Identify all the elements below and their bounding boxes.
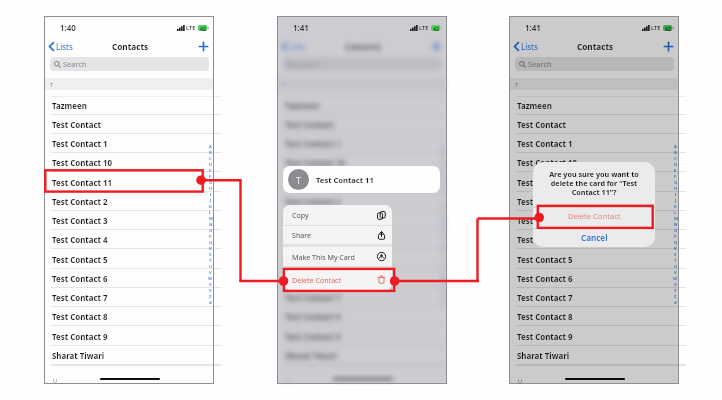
button[interactable]: Test Contact 10 <box>44 153 214 172</box>
button[interactable]: Test Contact 10 <box>509 153 679 172</box>
button[interactable]: Tazmeen <box>277 96 447 115</box>
button[interactable]: Test Contact 11 <box>509 173 679 192</box>
staticText: J <box>675 197 677 203</box>
staticText: H <box>209 185 213 191</box>
staticText: 1:41 <box>293 22 309 33</box>
button[interactable]: Tazmeen <box>44 96 214 115</box>
button[interactable]: Test Contact 7 <box>277 288 447 307</box>
staticText: B <box>209 149 212 155</box>
button[interactable]: Test Contact 4 <box>44 230 214 249</box>
button[interactable]: Test Contact 5 <box>509 250 679 269</box>
button[interactable]: Add contact <box>430 40 443 53</box>
button[interactable]: Test Contact 3 <box>509 211 679 230</box>
staticText: Test Contact 4 <box>517 235 573 246</box>
button[interactable]: T <box>283 166 440 193</box>
button[interactable]: Test Contact 8 <box>509 307 679 326</box>
staticText: Q <box>674 239 678 245</box>
staticText: Search <box>63 59 87 69</box>
button[interactable]: Delete Contact <box>283 269 392 290</box>
button[interactable]: Test Contact 8 <box>277 307 447 326</box>
button[interactable]: Lists <box>48 39 74 54</box>
button[interactable]: Test Contact 5 <box>277 250 447 269</box>
staticText: Test Contact 7 <box>52 293 108 304</box>
button[interactable]: Add contact <box>662 40 675 53</box>
staticText: Test Contact 8 <box>517 312 573 323</box>
staticText: # <box>674 299 677 305</box>
button[interactable]: Test Contact 2 <box>44 192 214 211</box>
button[interactable]: Test Contact 2 <box>277 192 447 211</box>
button[interactable]: Test Contact 3 <box>44 211 214 230</box>
staticText: Y <box>674 287 677 293</box>
button[interactable]: Share <box>283 226 392 244</box>
button[interactable]: Test Contact 8 <box>44 307 214 326</box>
staticText: Tazmeen <box>52 101 87 112</box>
button[interactable]: Test Contact 11 <box>277 173 447 192</box>
button[interactable]: Test Contact 9 <box>44 327 214 346</box>
button[interactable]: Test Contact <box>277 115 447 134</box>
staticText: 1:41 <box>525 22 541 33</box>
button[interactable]: Test Contact <box>44 115 214 134</box>
staticText: C <box>674 155 677 161</box>
button[interactable]: Sharat Tiwari <box>44 346 214 365</box>
staticText: Test Contact 6 <box>285 274 341 285</box>
staticText: C <box>209 155 212 161</box>
staticText: W <box>441 275 446 281</box>
button[interactable]: Search <box>515 57 674 71</box>
staticText: O <box>674 227 678 233</box>
button[interactable]: Test Contact 9 <box>509 327 679 346</box>
button[interactable]: Test Contact 2 <box>509 192 679 211</box>
button[interactable]: Search <box>283 57 442 71</box>
staticText: Make This My Card <box>292 252 377 262</box>
button[interactable]: Test Contact 4 <box>277 230 447 249</box>
staticText: X <box>442 281 445 287</box>
staticText: Z <box>209 293 212 299</box>
button[interactable]: Add contact <box>197 40 210 53</box>
staticText: X <box>209 281 212 287</box>
staticText: Are you sure you want to delete the card… <box>541 169 647 197</box>
button[interactable]: Test Contact 5 <box>44 250 214 269</box>
staticText: Test Contact 10 <box>52 158 113 169</box>
button[interactable]: Lists <box>513 39 539 54</box>
button[interactable]: Test Contact 7 <box>44 288 214 307</box>
staticText: Tazmeen <box>285 101 320 112</box>
button[interactable]: Test Contact 4 <box>509 230 679 249</box>
staticText: Test Contact 7 <box>285 293 341 304</box>
staticText: Test Contact 8 <box>52 312 108 323</box>
staticText: O <box>209 227 213 233</box>
button[interactable]: Sharat Tiwari <box>509 346 679 365</box>
button[interactable]: Test Contact 3 <box>277 211 447 230</box>
staticText: D <box>209 161 213 167</box>
button[interactable]: Test Contact 6 <box>277 269 447 288</box>
staticText: P <box>209 233 212 239</box>
button[interactable]: Test Contact 6 <box>509 269 679 288</box>
button[interactable]: Cancel <box>533 229 655 247</box>
button[interactable]: Delete Contact <box>533 208 655 228</box>
button[interactable]: Search <box>50 57 209 71</box>
button[interactable]: Test Contact 1 <box>277 134 447 153</box>
button[interactable]: Test Contact 1 <box>44 134 214 153</box>
button[interactable]: Test Contact 10 <box>277 153 447 172</box>
button[interactable]: Sharat Tiwari <box>277 346 447 365</box>
button[interactable]: Lists <box>281 39 307 54</box>
staticText: L <box>674 209 677 215</box>
button[interactable]: Tazmeen <box>509 96 679 115</box>
staticText: V <box>209 269 212 275</box>
button[interactable]: Test Contact 7 <box>509 288 679 307</box>
button[interactable]: Make This My Card <box>283 247 392 266</box>
button[interactable]: Test Contact 6 <box>44 269 214 288</box>
button[interactable]: Test Contact 11 <box>44 173 214 192</box>
staticText: D <box>674 161 678 167</box>
staticText: T <box>296 174 302 186</box>
staticText: E <box>209 167 212 173</box>
button[interactable]: Test Contact <box>509 115 679 134</box>
button[interactable]: Test Contact 1 <box>509 134 679 153</box>
button[interactable]: Test Contact 9 <box>277 327 447 346</box>
button[interactable]: Copy <box>283 205 392 225</box>
